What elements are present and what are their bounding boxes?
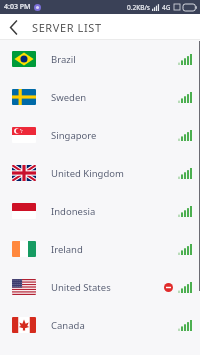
- staticText: United Kingdom: [51, 167, 124, 180]
- other: Signal strength: [178, 92, 192, 103]
- button[interactable]: Sweden: [0, 78, 200, 116]
- button[interactable]: Indonesia: [0, 192, 200, 230]
- staticText: 0.2KB/s: [127, 3, 150, 12]
- other: Premium locked: [164, 283, 173, 292]
- button[interactable]: Canada: [0, 306, 200, 344]
- staticText: 4:03 PM: [4, 2, 31, 12]
- button[interactable]: Ireland: [0, 230, 200, 268]
- staticText: Ireland: [51, 243, 83, 256]
- staticText: United States: [51, 281, 111, 294]
- staticText: SERVER LIST: [32, 20, 102, 35]
- other: Signal strength: [178, 54, 192, 65]
- button[interactable]: Singapore: [0, 116, 200, 154]
- button[interactable]: Back: [0, 14, 26, 40]
- staticText: Indonesia: [51, 205, 96, 218]
- button[interactable]: United States: [0, 268, 200, 306]
- other: Signal strength: [178, 168, 192, 179]
- staticText: 4G: [162, 3, 171, 12]
- other: Signal strength: [178, 244, 192, 255]
- other: Signal strength: [178, 282, 192, 293]
- staticText: Singapore: [51, 129, 97, 142]
- button[interactable]: Brazil: [0, 40, 200, 78]
- other: Signal strength: [178, 130, 192, 141]
- other: Signal strength: [178, 320, 192, 331]
- other: Signal strength: [178, 206, 192, 217]
- staticText: Brazil: [51, 53, 76, 66]
- staticText: Canada: [51, 319, 85, 332]
- button[interactable]: United Kingdom: [0, 154, 200, 192]
- staticText: Sweden: [51, 91, 87, 104]
